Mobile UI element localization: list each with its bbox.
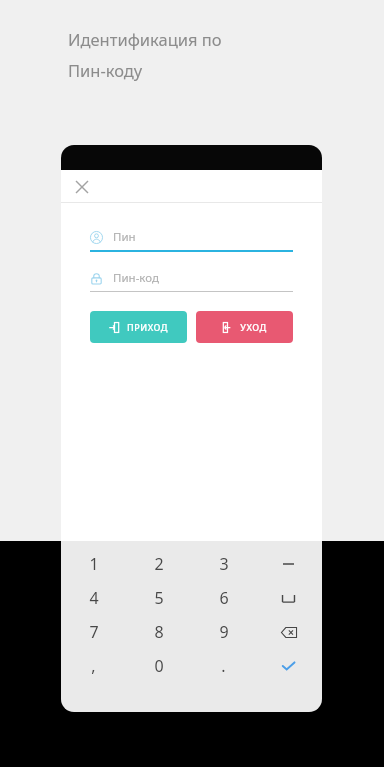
staticText: 6 (219, 587, 229, 609)
staticText: 9 (219, 621, 229, 643)
button[interactable]: 7 (61, 615, 126, 649)
staticText: Пин-код (113, 270, 159, 286)
button[interactable]: Backspace (256, 615, 321, 649)
button[interactable]: 8 (126, 615, 191, 649)
staticText: Пин-коду (68, 59, 143, 81)
staticText: 7 (89, 621, 99, 643)
button[interactable]: 6 (191, 581, 256, 615)
button[interactable]: 4 (61, 581, 126, 615)
staticText: УХОД (240, 321, 267, 333)
staticText: 5 (154, 587, 164, 609)
staticText: , (91, 655, 96, 677)
staticText: 0 (154, 655, 164, 677)
button[interactable]: 3 (191, 547, 256, 581)
staticText: 4 (89, 587, 99, 609)
staticText: . (221, 655, 226, 677)
button[interactable]: , (61, 649, 126, 683)
button[interactable]: Enter (256, 649, 321, 683)
button[interactable]: 0 (126, 649, 191, 683)
button[interactable]: . (191, 649, 256, 683)
button[interactable]: 5 (126, 581, 191, 615)
staticText: 2 (154, 553, 164, 575)
staticText: 8 (154, 621, 164, 643)
staticText: 3 (219, 553, 229, 575)
button[interactable]: 1 (61, 547, 126, 581)
button[interactable]: УХОД (196, 311, 293, 343)
staticText: Идентификация по (68, 28, 222, 50)
button[interactable]: Space (256, 581, 321, 615)
button[interactable]: Minus (256, 547, 321, 581)
button[interactable]: ПРИХОД (90, 311, 187, 343)
staticText: 1 (89, 553, 99, 575)
button[interactable]: 9 (191, 615, 256, 649)
button[interactable]: Close (69, 174, 95, 200)
button[interactable]: 2 (126, 547, 191, 581)
staticText: ПРИХОД (127, 321, 168, 333)
staticText: Пин (113, 229, 136, 245)
